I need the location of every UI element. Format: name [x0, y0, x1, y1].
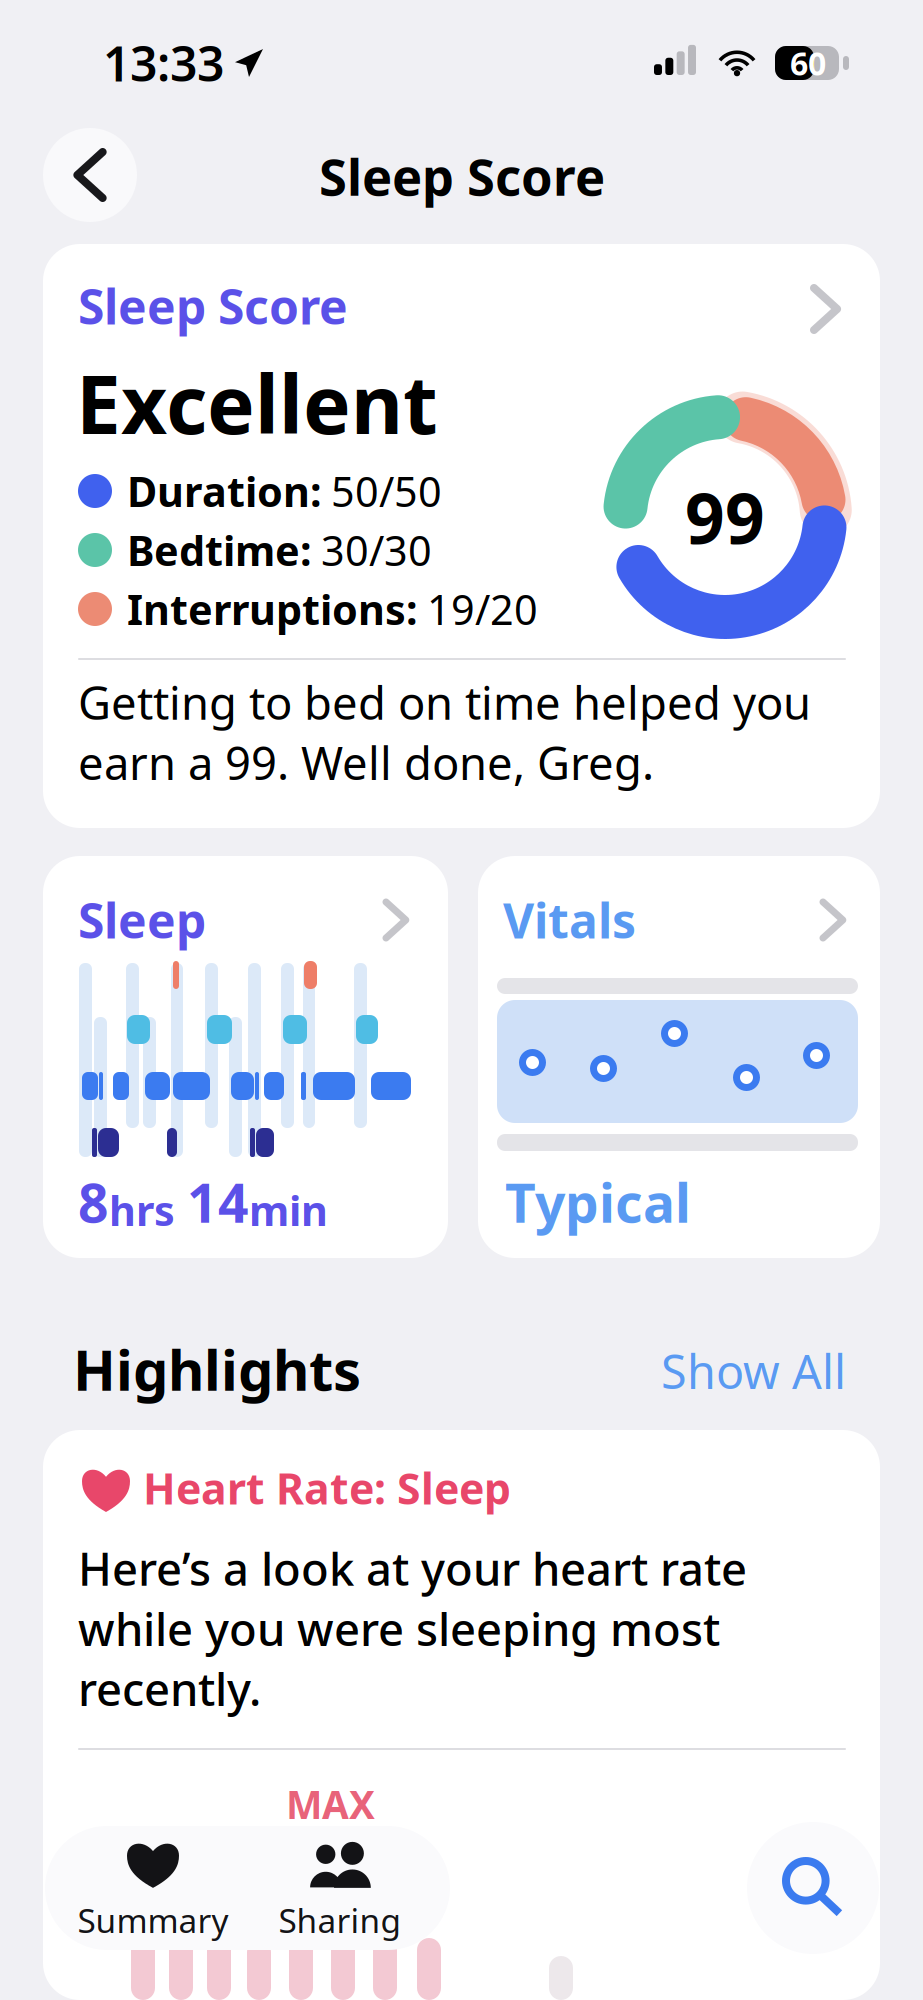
button[interactable]: Summary [63, 1846, 243, 1938]
staticText: Interruptions: [127, 582, 418, 636]
staticText: 60 [790, 42, 826, 84]
staticText: Sharing [278, 1898, 401, 1942]
staticText: Here’s a look at your heart rate while y… [78, 1538, 747, 1719]
button[interactable]: Show All [663, 1348, 846, 1394]
staticText: hrs [109, 1182, 175, 1237]
staticText: Duration: [127, 464, 322, 518]
staticText: min [249, 1182, 328, 1237]
staticText: Highlights [73, 1332, 361, 1406]
staticText: Getting to bed on time helped you earn a… [78, 672, 811, 792]
button[interactable]: Sleep [43, 856, 448, 1258]
staticText: Sleep Score [78, 274, 348, 338]
staticText: 50/50 [331, 464, 442, 518]
button[interactable]: Vitals [478, 856, 880, 1258]
button[interactable]: Sharing [250, 1846, 430, 1938]
staticText: 99 [685, 471, 765, 563]
staticText: Bedtime: [127, 523, 312, 577]
staticText: Summary [77, 1898, 228, 1942]
staticText: 13:33 [103, 31, 224, 95]
staticText: 8 [78, 1167, 109, 1237]
staticText: Typical [505, 1167, 691, 1237]
staticText: Sleep Score [319, 142, 605, 210]
staticText: Excellent [76, 350, 438, 456]
staticText: Vitals [503, 888, 636, 952]
staticText: Sleep [78, 888, 206, 952]
staticText: MAX [286, 1778, 375, 1830]
button[interactable]: Search [747, 1822, 879, 1954]
staticText: Heart Rate: Sleep [143, 1460, 511, 1516]
button[interactable]: Sleep Score [43, 244, 880, 828]
button[interactable]: Back [43, 128, 137, 222]
staticText: 14 [187, 1167, 249, 1237]
staticText: 30/30 [321, 523, 432, 577]
staticText: Show All [661, 1340, 846, 1402]
staticText: 75 [291, 1817, 371, 1909]
staticText: 19/20 [427, 582, 538, 636]
